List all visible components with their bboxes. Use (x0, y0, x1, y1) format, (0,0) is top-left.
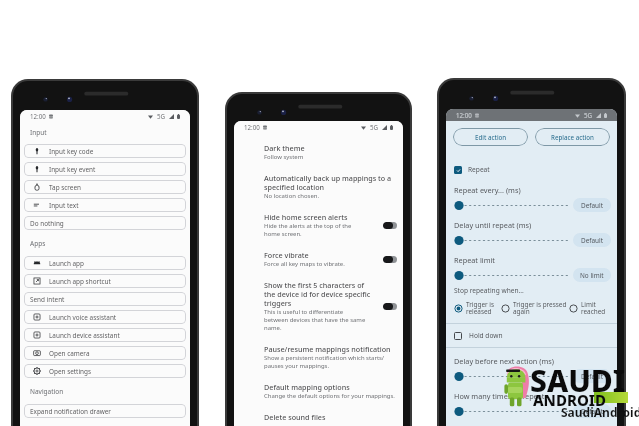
button[interactable]: Default (573, 233, 611, 247)
staticText: Open settings (49, 367, 92, 376)
button[interactable]: Dark theme (234, 137, 403, 167)
button[interactable]: Pause/resume mappings notification (234, 338, 403, 376)
staticText: Launch voice assistant (49, 313, 117, 322)
staticText: 12:00 (456, 111, 472, 119)
button[interactable]: Launch voice assistant (24, 310, 186, 324)
staticText: Launch app (49, 259, 84, 268)
button[interactable]: Default (573, 369, 611, 383)
button[interactable]: Toggle (383, 256, 397, 263)
staticText: Force all key maps to vibrate. (264, 260, 345, 268)
staticText: Do nothing (30, 219, 64, 228)
staticText: Force vibrate (264, 250, 309, 260)
staticText: Follow system (264, 153, 304, 161)
staticText: Edit action (475, 133, 507, 141)
staticText: Default (581, 372, 603, 381)
button[interactable]: Trigger is pressed again (501, 300, 569, 316)
staticText: Dark theme (264, 143, 305, 153)
staticText: Launch app shortcut (49, 277, 111, 286)
staticText: Expand notification drawer (30, 407, 111, 416)
staticText: 12:00 (30, 112, 46, 120)
button[interactable]: Repeat (446, 154, 617, 177)
button[interactable]: Limit reached (569, 300, 613, 316)
button[interactable]: Hold down (446, 324, 617, 347)
button[interactable]: Hide home screen alerts (234, 206, 403, 244)
staticText: Send intent (30, 295, 65, 304)
staticText: Open camera (49, 349, 90, 358)
staticText: How many times to repeat (454, 391, 545, 401)
button[interactable]: Toggle (383, 222, 397, 229)
button[interactable]: Do nothing (24, 216, 186, 230)
button[interactable]: Input key event (24, 162, 186, 176)
button[interactable]: Default (573, 198, 611, 212)
staticText: Launch device assistant (49, 331, 120, 340)
button[interactable]: Delete sound files (234, 406, 403, 426)
staticText: No location chosen. (264, 192, 319, 200)
staticText: Input key event (49, 165, 96, 174)
staticText: Repeat every... (ms) (454, 185, 521, 195)
button[interactable]: Automatically back up mappings to a spec… (234, 167, 403, 206)
staticText: ANDROID (533, 390, 607, 410)
staticText: Limit reached (581, 300, 606, 316)
staticText: Repeat limit (454, 255, 495, 265)
button[interactable]: Default mapping options (234, 376, 403, 406)
staticText: Trigger is pressed again (513, 300, 567, 316)
button[interactable]: Launch app shortcut (24, 274, 186, 288)
staticText: 5G (370, 123, 379, 131)
staticText: Pause/resume mappings notification (264, 344, 391, 354)
button[interactable]: Show the first 5 characters of the devic… (234, 274, 403, 338)
button[interactable]: Send intent (24, 292, 186, 306)
staticText: Trigger is released (466, 300, 494, 316)
staticText: Apps (30, 239, 46, 248)
staticText: Input key code (49, 147, 94, 156)
staticText: Default mapping options (264, 382, 350, 392)
button[interactable]: Open camera (24, 346, 186, 360)
staticText: Hide the alerts at the top of the home s… (264, 222, 352, 238)
button[interactable]: Expand notification drawer (24, 404, 186, 418)
button[interactable]: Force vibrate (234, 244, 403, 274)
button[interactable]: Launch app (24, 256, 186, 270)
staticText: Default (581, 236, 603, 245)
button[interactable]: Default (573, 404, 611, 418)
staticText: No limit (580, 271, 604, 280)
staticText: Repeat (468, 165, 490, 174)
staticText: Delay until repeat (ms) (454, 220, 532, 230)
staticText: Tap screen (49, 183, 82, 192)
staticText: Show the first 5 characters of the devic… (264, 280, 371, 308)
staticText: Replace action (551, 133, 594, 141)
staticText: Default (581, 407, 603, 416)
staticText: Input (30, 128, 47, 137)
staticText: 12:00 (244, 123, 260, 131)
button[interactable]: Replace action (535, 128, 610, 146)
staticText: Hold down (469, 331, 503, 340)
button[interactable]: Open settings (24, 364, 186, 378)
staticText: Delete sound files (264, 412, 326, 420)
staticText: Change the default options for your mapp… (264, 392, 395, 400)
staticText: Stop repeating when... (454, 286, 524, 295)
button[interactable]: Input text (24, 198, 186, 212)
button[interactable]: Trigger is released (454, 300, 501, 316)
staticText: Default (581, 201, 603, 210)
staticText: Delay before next action (ms) (454, 356, 554, 366)
staticText: Automatically back up mappings to a spec… (264, 173, 392, 192)
button[interactable]: Toggle (383, 303, 397, 310)
button[interactable]: Launch device assistant (24, 328, 186, 342)
button[interactable]: Tap screen (24, 180, 186, 194)
staticText: SaudiAndroid.net (561, 404, 639, 420)
button[interactable]: No limit (573, 268, 611, 282)
staticText: SAUDI (530, 360, 626, 401)
staticText: Show a persistent notification which sta… (264, 354, 385, 370)
staticText: Navigation (30, 387, 64, 396)
staticText: 5G (584, 111, 593, 119)
staticText: 5G (157, 112, 166, 120)
button[interactable]: Edit action (453, 128, 528, 146)
staticText: This is useful to differentiate between … (264, 308, 366, 332)
staticText: Hide home screen alerts (264, 212, 348, 222)
button[interactable]: Input key code (24, 144, 186, 158)
staticText: Input text (49, 201, 79, 210)
